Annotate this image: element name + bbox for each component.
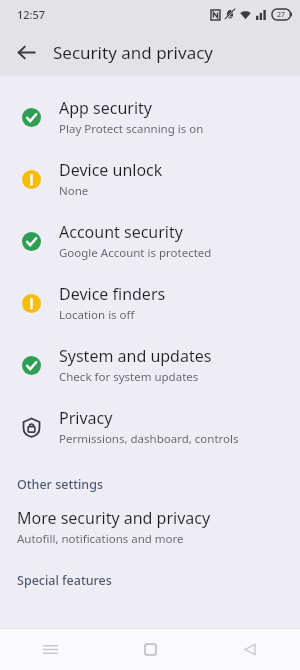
button[interactable]: Back: [200, 629, 300, 670]
button[interactable]: System and updates: [0, 334, 300, 396]
button[interactable]: Back: [8, 34, 44, 70]
staticText: Special features: [17, 572, 112, 589]
staticText: None: [59, 183, 89, 199]
staticText: Account security: [59, 221, 183, 243]
staticText: Google Account is protected: [59, 245, 212, 261]
staticText: Permissions, dashboard, controls: [59, 431, 239, 447]
button[interactable]: Device finders: [0, 272, 300, 334]
staticText: Autofill, notifications and more: [17, 531, 184, 547]
staticText: More security and privacy: [17, 507, 211, 529]
staticText: 12:57: [17, 7, 46, 22]
staticText: App security: [59, 97, 152, 119]
staticText: System and updates: [59, 345, 212, 367]
button[interactable]: Home: [100, 629, 200, 670]
staticText: 27: [277, 10, 286, 20]
staticText: Device unlock: [59, 159, 163, 181]
staticText: Security and privacy: [53, 41, 214, 64]
staticText: Other settings: [17, 476, 104, 493]
button[interactable]: Recent apps: [0, 629, 100, 670]
button[interactable]: Account security: [0, 210, 300, 272]
button[interactable]: Privacy: [0, 396, 300, 458]
button[interactable]: Device unlock: [0, 148, 300, 210]
button[interactable]: App security: [0, 86, 300, 148]
staticText: Location is off: [59, 307, 135, 323]
staticText: Check for system updates: [59, 369, 199, 385]
staticText: Privacy: [59, 407, 113, 429]
staticText: Play Protect scanning is on: [59, 121, 204, 137]
button[interactable]: More security and privacy: [0, 504, 300, 550]
staticText: Device finders: [59, 283, 166, 305]
